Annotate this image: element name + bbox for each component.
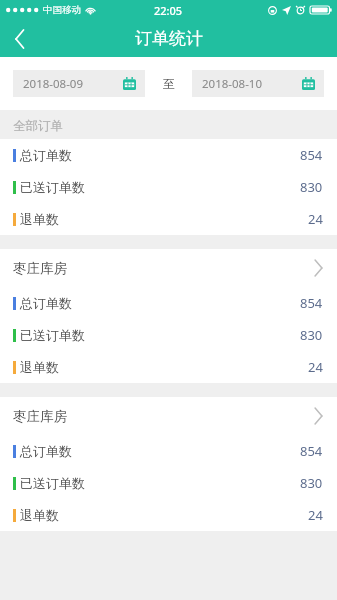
staticText: 已送订单数 [20, 179, 300, 195]
button[interactable]: 退单数 [0, 203, 337, 235]
staticText: 830 [300, 326, 323, 344]
staticText: 订单统计 [135, 28, 203, 49]
button[interactable]: Back [0, 20, 40, 57]
button[interactable]: 已送订单数 [0, 171, 337, 203]
staticText: 总订单数 [20, 295, 300, 311]
staticText: 已送订单数 [20, 327, 300, 343]
staticText: 已送订单数 [20, 475, 300, 491]
staticText: 2018-08-09 [23, 76, 123, 92]
button[interactable]: 已送订单数 [0, 467, 337, 499]
staticText: 退单数 [20, 211, 308, 227]
button[interactable]: 退单数 [0, 351, 337, 383]
staticText: 全部订单 [13, 118, 63, 134]
staticText: 总订单数 [20, 443, 300, 459]
staticText: 退单数 [20, 507, 308, 523]
staticText: 24 [308, 358, 323, 376]
staticText: 854 [300, 146, 323, 164]
staticText: 830 [300, 474, 323, 492]
staticText: 830 [300, 178, 323, 196]
button[interactable]: 总订单数 [0, 287, 337, 319]
staticText: 中国移动 [43, 4, 81, 16]
button[interactable]: 2018-08-09 [13, 70, 145, 97]
button[interactable]: 已送订单数 [0, 319, 337, 351]
staticText: 24 [308, 506, 323, 524]
staticText: 至 [163, 76, 175, 91]
staticText: 854 [300, 442, 323, 460]
staticText: 24 [308, 210, 323, 228]
staticText: 854 [300, 294, 323, 312]
staticText: 枣庄库房 [13, 260, 314, 277]
staticText: 退单数 [20, 359, 308, 375]
button[interactable]: 2018-08-10 [192, 70, 324, 97]
button[interactable]: 枣庄库房 [0, 249, 337, 287]
button[interactable]: 枣庄库房 [0, 397, 337, 435]
staticText: 总订单数 [20, 147, 300, 163]
staticText: 2018-08-10 [202, 76, 302, 92]
staticText: 22:05 [154, 3, 183, 18]
button[interactable]: 退单数 [0, 499, 337, 531]
button[interactable]: 总订单数 [0, 139, 337, 171]
staticText: 枣庄库房 [13, 408, 314, 425]
button[interactable]: 总订单数 [0, 435, 337, 467]
